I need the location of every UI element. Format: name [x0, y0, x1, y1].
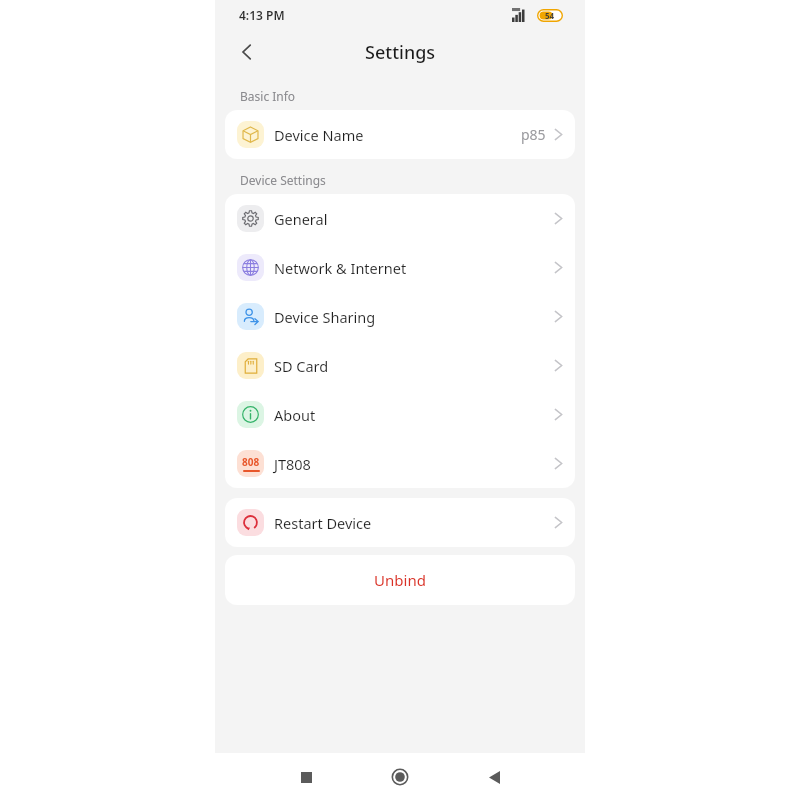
staticText: Unbind — [374, 570, 426, 590]
staticText: Device Settings — [240, 172, 326, 188]
staticText: 54 — [545, 10, 555, 21]
staticText: 808 — [242, 455, 260, 469]
staticText: Restart Device — [274, 513, 372, 533]
staticText: General — [274, 209, 328, 229]
button[interactable]: Device Name — [225, 110, 575, 159]
button[interactable]: Unbind — [225, 555, 575, 605]
staticText: Device Sharing — [274, 307, 376, 327]
button[interactable]: General — [225, 194, 575, 243]
button[interactable]: Network & Internet — [225, 243, 575, 292]
staticText: 4:13 PM — [239, 7, 285, 23]
staticText: JT808 — [274, 454, 311, 474]
button[interactable]: 808 — [225, 439, 575, 488]
staticText: Device Name — [274, 125, 364, 145]
staticText: Basic Info — [240, 88, 296, 104]
button[interactable]: Restart Device — [225, 498, 575, 547]
button[interactable]: Back — [227, 32, 267, 72]
staticText: About — [274, 405, 316, 425]
button[interactable]: Device Sharing — [225, 292, 575, 341]
button[interactable]: Home — [381, 758, 419, 796]
staticText: SD Card — [274, 356, 329, 376]
button[interactable]: Recents — [287, 758, 325, 796]
button[interactable]: Back — [475, 758, 513, 796]
button[interactable]: About — [225, 390, 575, 439]
staticText: p85 — [521, 125, 546, 144]
staticText: Settings — [365, 40, 436, 65]
staticText: Network & Internet — [274, 258, 407, 278]
button[interactable]: SD Card — [225, 341, 575, 390]
